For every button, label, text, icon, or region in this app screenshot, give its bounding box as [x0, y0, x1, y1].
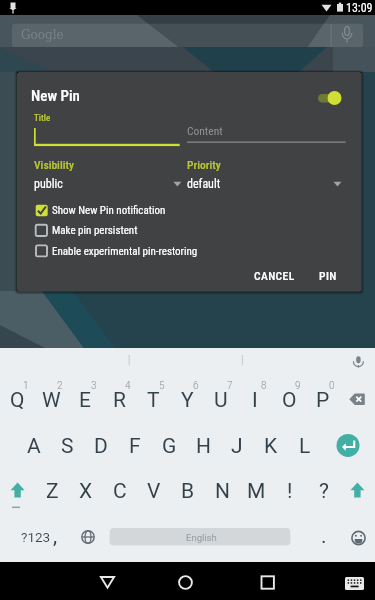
- button[interactable]: [187, 126, 345, 144]
- staticText: P: [316, 388, 330, 413]
- staticText: L: [299, 434, 311, 459]
- button[interactable]: Z: [35, 474, 69, 508]
- staticText: 7: [227, 380, 233, 392]
- staticText: Q: [10, 388, 25, 413]
- button[interactable]: [34, 202, 244, 219]
- staticText: D: [94, 434, 108, 459]
- staticText: J: [231, 434, 243, 459]
- button[interactable]: I: [238, 383, 272, 417]
- button[interactable]: [34, 243, 264, 260]
- button[interactable]: D: [84, 429, 118, 463]
- staticText: CANCEL: [254, 269, 295, 282]
- button[interactable]: B: [171, 474, 205, 508]
- button[interactable]: !: [273, 474, 307, 508]
- button[interactable]: L: [288, 429, 322, 463]
- staticText: ,: [53, 524, 58, 549]
- staticText: Make pin persistent: [52, 224, 138, 237]
- button[interactable]: ?123: [12, 524, 60, 550]
- staticText: 13:09: [346, 1, 373, 15]
- staticText: 1: [23, 380, 29, 392]
- staticText: public: [34, 177, 63, 191]
- button[interactable]: CANCEL: [236, 259, 312, 291]
- staticText: Title: [34, 113, 51, 124]
- staticText: T: [147, 388, 160, 413]
- staticText: New Pin: [31, 87, 80, 105]
- button[interactable]: M: [239, 474, 273, 508]
- staticText: Y: [181, 388, 194, 413]
- button[interactable]: ?: [307, 474, 341, 508]
- button[interactable]: [344, 523, 373, 552]
- button[interactable]: .: [314, 523, 334, 549]
- button[interactable]: Q: [0, 383, 34, 417]
- button[interactable]: T: [136, 383, 170, 417]
- button[interactable]: ,: [45, 523, 65, 549]
- staticText: V: [147, 479, 161, 504]
- button[interactable]: W: [34, 383, 68, 417]
- staticText: Z: [46, 479, 59, 504]
- button[interactable]: S: [50, 429, 84, 463]
- staticText: F: [129, 434, 141, 459]
- staticText: 5: [159, 380, 165, 392]
- staticText: M: [247, 479, 266, 504]
- button[interactable]: PIN: [302, 259, 354, 291]
- button[interactable]: U: [204, 383, 238, 417]
- staticText: 2: [57, 380, 63, 392]
- button[interactable]: [34, 126, 180, 146]
- button[interactable]: F: [118, 429, 152, 463]
- button[interactable]: P: [306, 383, 340, 417]
- button[interactable]: [2, 471, 34, 511]
- button[interactable]: E: [68, 383, 102, 417]
- staticText: 4: [125, 380, 131, 392]
- button[interactable]: [341, 471, 373, 511]
- button[interactable]: [74, 523, 102, 551]
- button[interactable]: [12, 24, 331, 47]
- button[interactable]: O: [272, 383, 306, 417]
- button[interactable]: J: [220, 429, 254, 463]
- button[interactable]: [187, 173, 342, 194]
- button[interactable]: R: [102, 383, 136, 417]
- staticText: 0: [329, 380, 335, 392]
- button[interactable]: [34, 173, 182, 194]
- staticText: English: [186, 532, 217, 543]
- button[interactable]: [110, 528, 291, 546]
- staticText: !: [287, 479, 293, 504]
- button[interactable]: A: [17, 429, 51, 463]
- button[interactable]: [312, 86, 348, 110]
- button[interactable]: X: [69, 474, 103, 508]
- staticText: O: [282, 388, 297, 413]
- staticText: Visibility: [34, 158, 74, 171]
- staticText: S: [61, 434, 74, 459]
- staticText: K: [264, 434, 278, 459]
- button[interactable]: H: [186, 429, 220, 463]
- button[interactable]: N: [205, 474, 239, 508]
- button[interactable]: [332, 24, 363, 47]
- button[interactable]: [245, 563, 285, 600]
- button[interactable]: Y: [170, 383, 204, 417]
- button[interactable]: C: [103, 474, 137, 508]
- button[interactable]: [166, 563, 206, 600]
- staticText: X: [79, 479, 93, 504]
- button[interactable]: [341, 378, 375, 422]
- staticText: A: [27, 434, 41, 459]
- staticText: U: [214, 388, 228, 413]
- button[interactable]: [340, 565, 374, 598]
- button[interactable]: [34, 222, 244, 239]
- staticText: G: [162, 434, 177, 459]
- staticText: Priority: [187, 158, 221, 171]
- staticText: 8: [261, 380, 267, 392]
- staticText: 6: [193, 380, 199, 392]
- button[interactable]: [330, 427, 370, 465]
- staticText: B: [181, 479, 195, 504]
- staticText: ?: [319, 479, 329, 504]
- staticText: Content: [187, 124, 223, 137]
- staticText: .: [321, 524, 327, 549]
- button[interactable]: G: [152, 429, 186, 463]
- button[interactable]: K: [254, 429, 288, 463]
- button[interactable]: [342, 350, 375, 374]
- staticText: N: [215, 479, 230, 504]
- staticText: 3: [91, 380, 97, 392]
- button[interactable]: [88, 563, 128, 600]
- button[interactable]: V: [137, 474, 171, 508]
- staticText: C: [113, 479, 127, 504]
- staticText: 9: [295, 380, 301, 392]
